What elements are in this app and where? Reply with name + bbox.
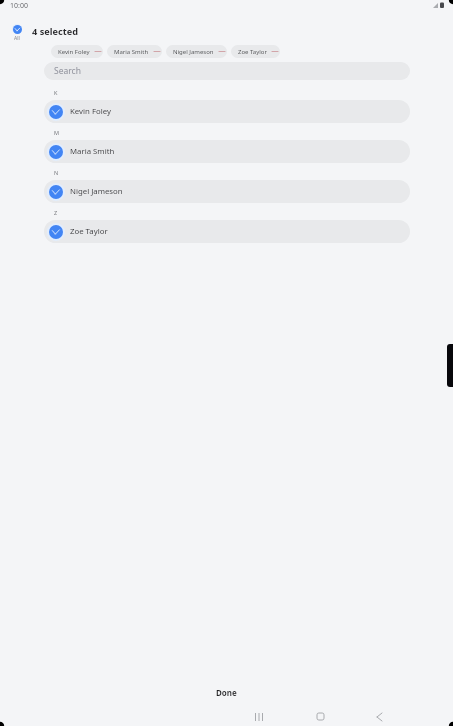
staticText: Zoe Taylor <box>238 48 267 56</box>
button[interactable]: Done <box>202 682 251 703</box>
button[interactable]: Select all <box>8 24 25 42</box>
button[interactable]: Nigel Jameson <box>44 180 410 203</box>
button[interactable]: Kevin Foley <box>51 45 103 58</box>
staticText: 10:00 <box>10 1 28 11</box>
staticText: Maria Smith <box>70 146 115 157</box>
staticText: Kevin Foley <box>70 106 111 117</box>
staticText: Z <box>54 209 58 216</box>
button[interactable]: Recents <box>245 703 272 726</box>
button[interactable]: Nigel Jameson <box>166 45 227 58</box>
staticText: M <box>54 129 59 136</box>
staticText: N <box>54 169 59 176</box>
button[interactable]: Maria Smith <box>44 140 410 163</box>
button[interactable]: Back <box>366 703 393 726</box>
button[interactable]: Home <box>307 703 334 726</box>
button[interactable]: Zoe Taylor <box>231 45 280 58</box>
staticText: K <box>54 89 58 96</box>
staticText: Zoe Taylor <box>70 226 108 237</box>
staticText: Nigel Jameson <box>70 186 123 197</box>
staticText: Search <box>54 65 81 77</box>
staticText: Maria Smith <box>114 48 149 56</box>
staticText: Kevin Foley <box>58 48 90 56</box>
staticText: Done <box>216 687 237 698</box>
staticText: Nigel Jameson <box>173 48 214 56</box>
staticText: All <box>14 35 20 42</box>
button[interactable]: Search <box>44 62 410 80</box>
other: Edge panel <box>447 344 453 387</box>
button[interactable]: Zoe Taylor <box>44 220 410 243</box>
button[interactable]: Maria Smith <box>107 45 162 58</box>
staticText: 4 selected <box>32 25 78 38</box>
button[interactable]: Kevin Foley <box>44 100 410 123</box>
